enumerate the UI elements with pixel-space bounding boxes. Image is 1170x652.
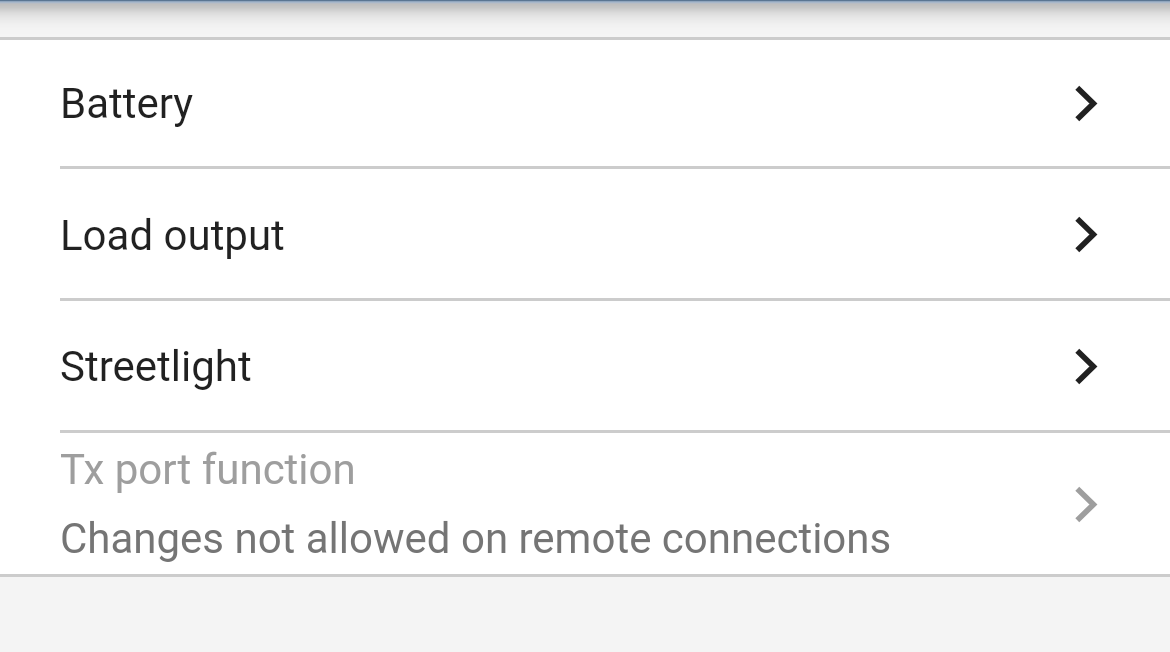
other: Open Battery <box>1075 86 1098 121</box>
other: Open Streetlight <box>1075 349 1098 384</box>
staticText: Tx port function <box>60 445 356 494</box>
staticText: Changes not allowed on remote connection… <box>60 514 892 563</box>
button[interactable]: Tx port function <box>0 433 1170 574</box>
other: Open Load output <box>1075 217 1098 252</box>
button[interactable]: Load output <box>0 169 1170 298</box>
staticText: Battery <box>60 79 194 128</box>
staticText: Load output <box>60 211 285 260</box>
staticText: Streetlight <box>60 342 252 391</box>
other: Open Tx port function <box>1075 487 1098 522</box>
button[interactable]: Battery <box>0 40 1170 166</box>
button[interactable]: Streetlight <box>0 301 1170 430</box>
